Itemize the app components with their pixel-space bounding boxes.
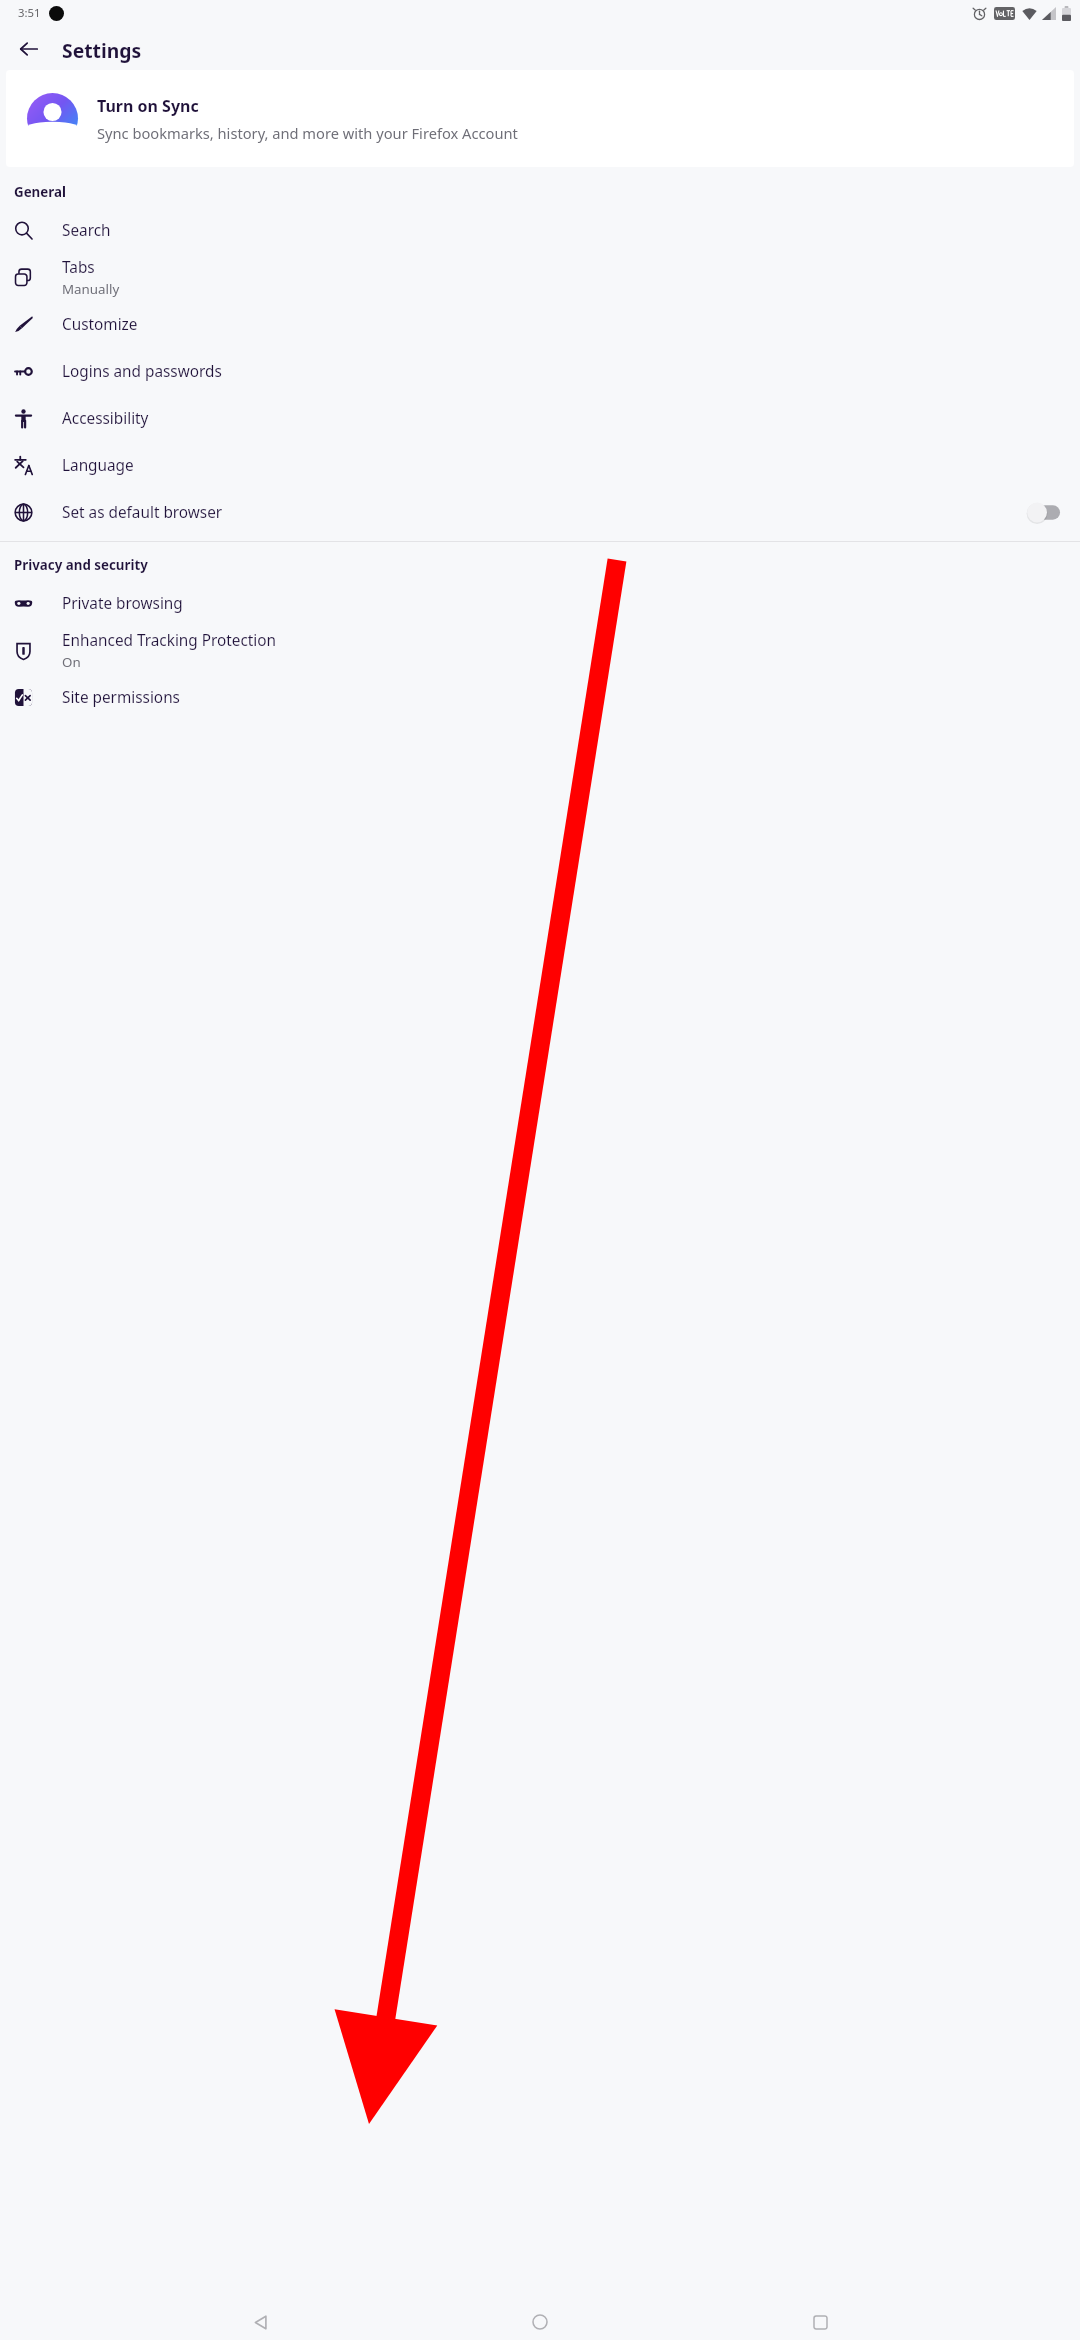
button[interactable]: Turn on Sync [6, 70, 1074, 167]
staticText: Turn on Sync [97, 95, 199, 117]
staticText: Private browsing [62, 593, 183, 614]
staticText: Search [62, 220, 111, 241]
button[interactable]: Back [240, 2304, 280, 2340]
staticText: Settings [62, 37, 142, 63]
staticText: Logins and passwords [62, 361, 222, 382]
button[interactable]: Back [10, 30, 47, 67]
button[interactable]: Home [520, 2304, 560, 2340]
staticText: Manually [62, 280, 120, 298]
staticText: Language [62, 455, 134, 476]
button[interactable]: Set as default browser toggle [1026, 501, 1063, 524]
button[interactable]: Tabs [0, 254, 1080, 301]
button[interactable]: Logins and passwords [0, 348, 1080, 395]
staticText: Privacy and security [14, 556, 148, 574]
button[interactable]: Language [0, 442, 1080, 489]
staticText: Accessibility [62, 408, 149, 429]
button[interactable]: Private browsing [0, 580, 1080, 627]
staticText: 3:51 [18, 5, 41, 20]
button[interactable]: Set as default browser [0, 489, 1080, 536]
staticText: On [62, 653, 81, 671]
staticText: General [14, 183, 66, 201]
staticText: Sync bookmarks, history, and more with y… [97, 123, 518, 143]
button[interactable]: Recent apps [800, 2304, 840, 2340]
button[interactable]: Customize [0, 301, 1080, 348]
staticText: Set as default browser [62, 502, 223, 523]
staticText: Tabs [62, 257, 95, 278]
staticText: Customize [62, 314, 138, 335]
button[interactable]: Search [0, 207, 1080, 254]
staticText: Site permissions [62, 687, 180, 708]
button[interactable]: Accessibility [0, 395, 1080, 442]
button[interactable]: Enhanced Tracking Protection [0, 627, 1080, 674]
staticText: Enhanced Tracking Protection [62, 630, 277, 651]
button[interactable]: Site permissions [0, 674, 1080, 721]
